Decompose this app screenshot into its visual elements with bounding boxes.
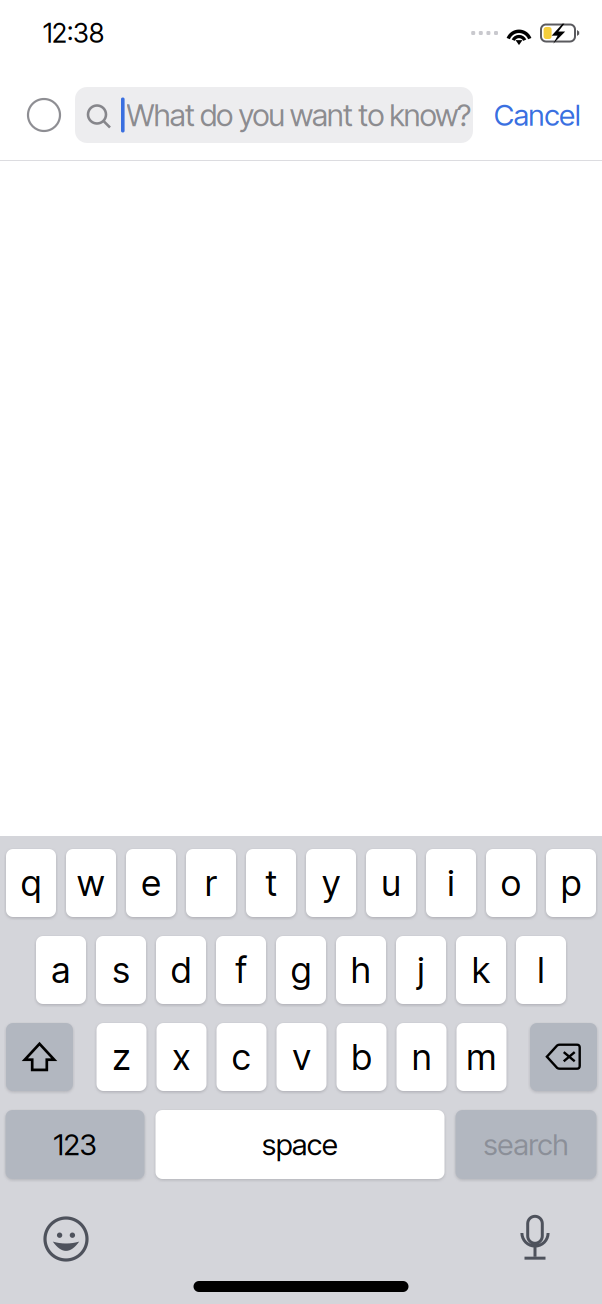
button[interactable]: v <box>276 1023 326 1091</box>
staticText: s <box>112 948 129 992</box>
staticText: y <box>322 861 340 905</box>
button[interactable]: Dictation <box>509 1213 561 1265</box>
staticText: f <box>235 948 246 992</box>
button[interactable]: 123 <box>5 1110 144 1179</box>
staticText: m <box>466 1035 496 1079</box>
button[interactable]: b <box>336 1023 386 1091</box>
staticText: r <box>205 861 217 905</box>
button[interactable]: i <box>426 849 476 917</box>
button[interactable]: h <box>336 936 386 1004</box>
button[interactable]: c <box>216 1023 266 1091</box>
button[interactable]: l <box>516 936 566 1004</box>
button[interactable]: o <box>486 849 536 917</box>
staticText: 12:38 <box>43 17 104 49</box>
staticText: Cancel <box>494 97 581 133</box>
staticText: What do you want to know? <box>127 96 471 133</box>
staticText: a <box>51 948 70 992</box>
staticText: e <box>141 861 160 905</box>
staticText: w <box>77 861 105 905</box>
staticText: g <box>291 948 311 992</box>
button[interactable]: g <box>276 936 326 1004</box>
staticText: 123 <box>53 1127 96 1162</box>
button[interactable]: Delete <box>530 1023 597 1091</box>
staticText: search <box>483 1127 568 1162</box>
button[interactable]: z <box>96 1023 146 1091</box>
staticText: c <box>232 1035 251 1079</box>
button[interactable]: p <box>546 849 596 917</box>
button[interactable]: d <box>156 936 206 1004</box>
staticText: j <box>417 948 424 992</box>
staticText: k <box>472 948 490 992</box>
staticText: x <box>172 1035 190 1079</box>
staticText: q <box>21 861 41 905</box>
button[interactable]: j <box>396 936 446 1004</box>
staticText: p <box>561 861 581 905</box>
button[interactable]: Account <box>0 99 75 131</box>
button[interactable]: r <box>186 849 236 917</box>
button[interactable]: q <box>6 849 56 917</box>
staticText: u <box>381 861 400 905</box>
staticText: n <box>412 1035 431 1079</box>
button[interactable]: a <box>36 936 86 1004</box>
button[interactable]: k <box>456 936 506 1004</box>
button[interactable]: t <box>246 849 296 917</box>
button[interactable]: w <box>66 849 116 917</box>
button[interactable]: f <box>216 936 266 1004</box>
button[interactable]: s <box>96 936 146 1004</box>
button[interactable]: search <box>455 1110 596 1179</box>
staticText: l <box>537 948 544 992</box>
staticText: b <box>351 1035 371 1079</box>
button[interactable]: y <box>306 849 356 917</box>
button[interactable]: Shift <box>6 1023 73 1091</box>
button[interactable]: x <box>156 1023 206 1091</box>
button[interactable]: e <box>126 849 176 917</box>
button[interactable]: m <box>456 1023 506 1091</box>
staticText: v <box>292 1035 310 1079</box>
staticText: h <box>351 948 371 992</box>
staticText: t <box>265 861 276 905</box>
button[interactable]: Emoji <box>36 1213 96 1265</box>
staticText: i <box>447 861 454 905</box>
button[interactable]: n <box>396 1023 446 1091</box>
staticText: space <box>262 1127 338 1162</box>
button[interactable]: space <box>155 1110 444 1179</box>
button[interactable]: Cancel <box>473 87 602 143</box>
staticText: d <box>171 948 191 992</box>
staticText: o <box>501 861 521 905</box>
button[interactable]: u <box>366 849 416 917</box>
staticText: z <box>112 1035 130 1079</box>
